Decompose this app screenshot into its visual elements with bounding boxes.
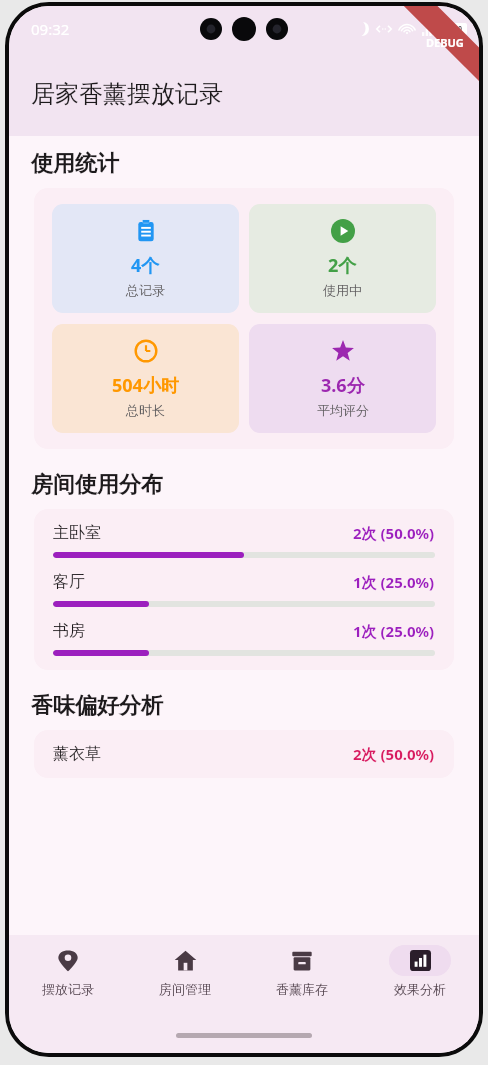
button[interactable]: 书房 [53, 621, 435, 656]
staticText: 摆放记录 [42, 981, 94, 997]
other: 房间管理 [174, 949, 197, 972]
staticText: 客厅 [53, 572, 353, 592]
staticText: 3.6分 [321, 373, 365, 398]
button[interactable]: 504小时 [52, 324, 239, 433]
staticText: 使用统计 [31, 150, 119, 178]
staticText: 09:32 [31, 19, 70, 39]
staticText: 2次 (50.0%) [353, 744, 435, 764]
staticText: 1次 (25.0%) [353, 572, 435, 592]
button[interactable]: 房间管理 [126, 935, 243, 1017]
staticText: 总记录 [126, 282, 165, 298]
other: 效果分析 [410, 950, 431, 971]
staticText: DEBUG [426, 35, 464, 50]
staticText: 1次 (25.0%) [353, 621, 435, 641]
staticText: 504小时 [112, 373, 179, 398]
staticText: 香薰库存 [276, 981, 328, 997]
other: 香薰库存 [291, 950, 313, 972]
other: 摆放记录 [57, 950, 79, 972]
button[interactable]: 香薰库存 [243, 935, 361, 1017]
staticText: 4个 [131, 253, 160, 278]
button[interactable]: 客厅 [53, 572, 435, 607]
staticText: 香味偏好分析 [31, 692, 163, 720]
staticText: 使用中 [323, 282, 362, 298]
staticText: 书房 [53, 621, 353, 641]
button[interactable]: 4个 [52, 204, 239, 313]
staticText: 2个 [328, 253, 357, 278]
staticText: 总时长 [126, 402, 165, 418]
staticText: 平均评分 [317, 402, 369, 418]
staticText: 薰衣草 [53, 744, 353, 764]
staticText: 2次 (50.0%) [353, 523, 435, 543]
staticText: 房间管理 [159, 981, 211, 997]
button[interactable]: 3.6分 [249, 324, 436, 433]
staticText: 效果分析 [394, 981, 446, 997]
button[interactable]: 2个 [249, 204, 436, 313]
button[interactable]: 效果分析 [361, 935, 479, 1017]
staticText: 房间使用分布 [31, 471, 163, 499]
staticText: 100 [450, 24, 463, 34]
staticText: 主卧室 [53, 523, 353, 543]
button[interactable]: 摆放记录 [9, 935, 126, 1017]
button[interactable]: 主卧室 [53, 523, 435, 558]
staticText: 居家香薰摆放记录 [31, 79, 223, 109]
